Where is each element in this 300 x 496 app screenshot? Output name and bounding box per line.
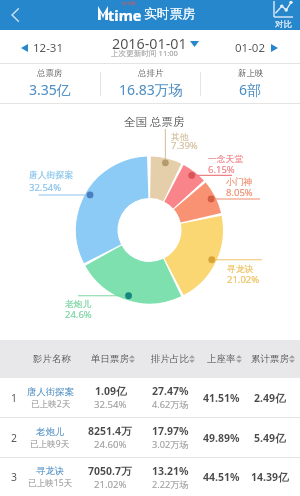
staticText: 排片占比 <box>151 353 189 365</box>
staticText: 41.51% <box>203 391 240 405</box>
staticText: 唐人街探案 <box>29 170 73 181</box>
button[interactable]: 总票房 <box>0 64 100 103</box>
staticText: 总票房 <box>37 68 63 79</box>
staticText: 32.54% <box>29 181 62 194</box>
staticText: 5.49亿 <box>254 431 286 445</box>
staticText: 时光网 <box>122 1 136 7</box>
staticText: 小门神 <box>226 177 253 188</box>
button[interactable]: 1 <box>0 378 300 418</box>
staticText: 累计票房 <box>251 353 289 365</box>
staticText: 21.02% <box>227 273 260 286</box>
staticText: 8.05% <box>226 186 253 199</box>
staticText: 老炮儿 <box>36 426 65 438</box>
button[interactable]: 影片名称 <box>19 340 85 378</box>
staticText: 已上映9天 <box>30 438 70 450</box>
staticText: 3.02万场 <box>152 438 189 451</box>
staticText: 2.22万场 <box>152 478 189 491</box>
staticText: 上次更新时间 11:00 <box>111 48 178 58</box>
staticText: 3 <box>11 470 18 484</box>
staticText: 12-31 <box>33 40 64 56</box>
button[interactable]: 总排片 <box>101 64 200 103</box>
button[interactable]: 累计票房 <box>240 340 300 378</box>
staticText: 1.09亿 <box>95 384 127 398</box>
staticText: 新上映 <box>238 68 264 79</box>
staticText: 全国 总票房 <box>124 114 185 130</box>
staticText: 44.51% <box>203 470 240 484</box>
staticText: 8251.4万 <box>88 424 132 438</box>
staticText: 24.6% <box>65 308 92 321</box>
button[interactable]: 新上映 <box>201 64 300 103</box>
staticText: 其他 <box>171 132 189 143</box>
staticText: 13.21% <box>152 464 189 478</box>
staticText: 已上映15天 <box>28 477 73 489</box>
staticText: 14.39亿 <box>251 470 289 484</box>
staticText: 单日票房 <box>91 353 129 365</box>
staticText: 4.62万场 <box>152 398 189 411</box>
staticText: 已上映2天 <box>31 398 71 410</box>
staticText: 老炮儿 <box>65 299 92 310</box>
staticText: 16.83万场 <box>119 80 183 99</box>
staticText: 总排片 <box>138 68 164 79</box>
staticText: 影片名称 <box>33 353 71 365</box>
staticText: 7050.7万 <box>88 464 132 478</box>
button[interactable]: 2 <box>0 418 300 458</box>
staticText: 2 <box>11 431 18 445</box>
staticText: 6.15% <box>208 163 235 176</box>
staticText: 寻龙诀 <box>36 465 65 477</box>
button[interactable]: 3 <box>0 458 300 496</box>
staticText: 2.49亿 <box>254 391 286 405</box>
staticText: 21.02% <box>94 478 127 491</box>
staticText: 24.60% <box>94 438 127 451</box>
staticText: 寻龙诀 <box>227 264 254 275</box>
staticText: 唐人街探案 <box>27 386 74 398</box>
button[interactable]: 12-31 <box>21 40 64 56</box>
staticText: 1 <box>11 391 18 405</box>
staticText: 27.47% <box>152 384 189 398</box>
button[interactable]: 01-02 <box>235 40 278 56</box>
staticText: 01-02 <box>235 40 266 56</box>
staticText: 49.89% <box>203 431 240 445</box>
button[interactable]: 上座率 <box>191 340 257 378</box>
button[interactable]: Back <box>0 0 30 30</box>
staticText: 上座率 <box>207 353 236 365</box>
button[interactable]: 对比 <box>264 0 300 30</box>
staticText: 7.39% <box>171 139 198 152</box>
staticText: 2016-01-01 <box>112 34 187 53</box>
staticText: 32.54% <box>94 398 127 411</box>
staticText: 实时票房 <box>144 6 196 22</box>
button[interactable]: 单日票房 <box>80 340 146 378</box>
staticText: 一念天堂 <box>208 154 244 165</box>
staticText: time <box>108 5 142 25</box>
button[interactable]: 排片占比 <box>140 340 206 378</box>
staticText: 对比 <box>275 19 292 30</box>
staticText: 17.97% <box>152 424 189 438</box>
staticText: 3.35亿 <box>29 80 71 99</box>
button[interactable]: 2016-01-01 <box>112 34 199 53</box>
staticText: 6部 <box>239 80 262 99</box>
